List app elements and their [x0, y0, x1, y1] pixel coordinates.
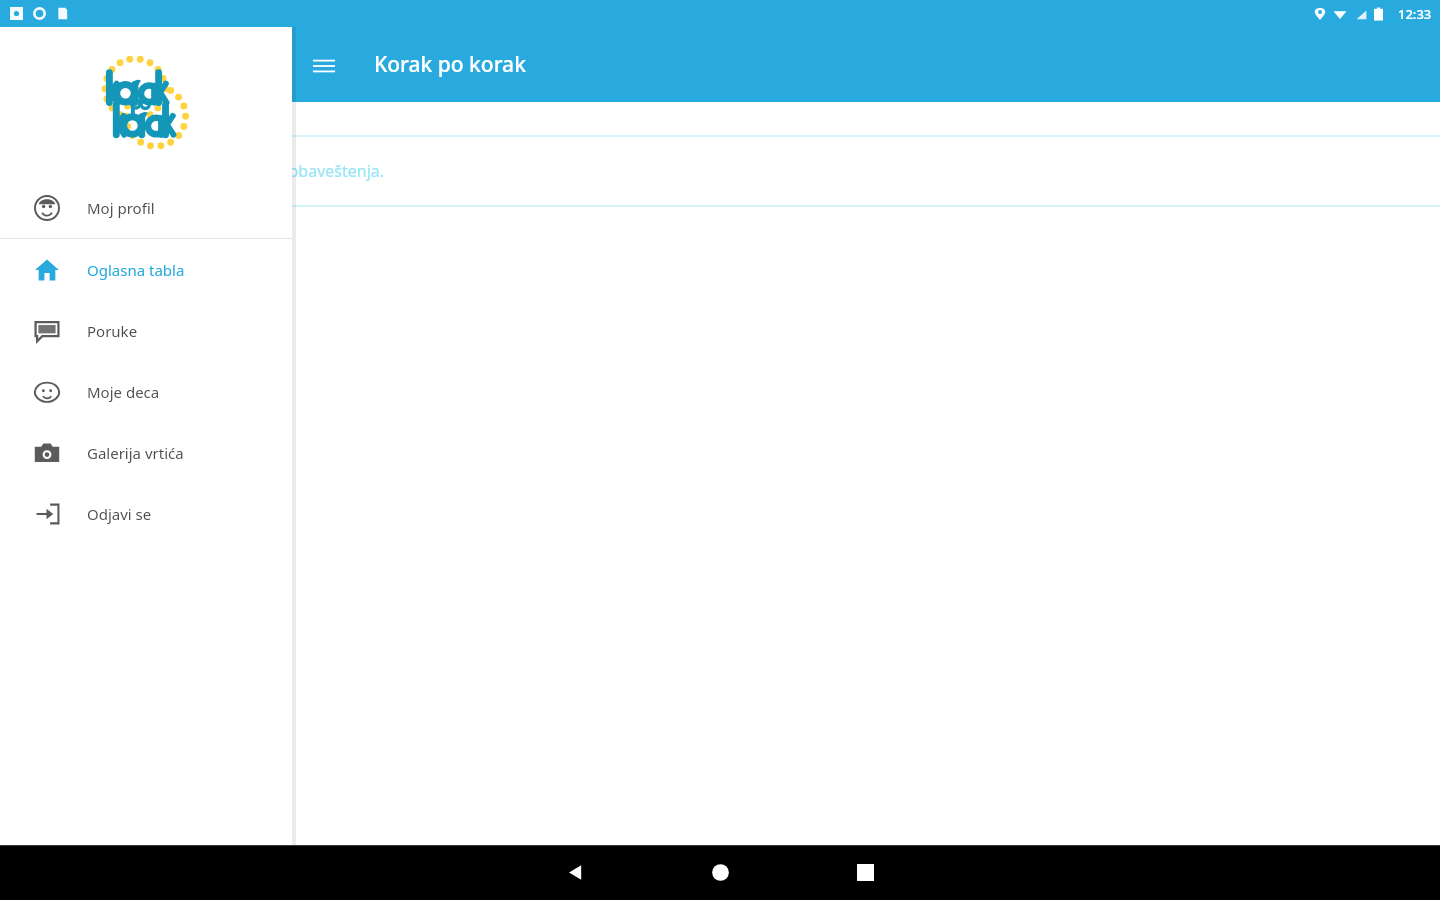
button[interactable]: Recent apps	[793, 845, 938, 900]
button[interactable]: Ne postoje prethodna obaveštenja.	[0, 135, 1440, 207]
button[interactable]: Moj profil	[0, 177, 292, 238]
staticText: Poruke	[87, 321, 138, 341]
staticText: Ne postoje prethodna obaveštenja.	[120, 160, 385, 182]
button[interactable]: Home	[648, 845, 793, 900]
button[interactable]: Back	[503, 845, 648, 900]
staticText: Galerija vrtića	[87, 443, 184, 463]
staticText: 12:33	[1398, 5, 1432, 23]
button[interactable]: Odjavi se	[0, 483, 292, 544]
staticText: Odjavi se	[87, 504, 152, 524]
button[interactable]: Galerija vrtića	[0, 422, 292, 483]
button[interactable]: Moje deca	[0, 361, 292, 422]
button[interactable]: Poruke	[0, 300, 292, 361]
staticText: Moj profil	[87, 198, 155, 218]
button[interactable]: Open navigation drawer	[300, 41, 348, 89]
button[interactable]: Oglasna tabla	[0, 239, 292, 300]
staticText: Oglasna tabla	[87, 260, 185, 280]
staticText: Korak po korak	[374, 50, 526, 79]
staticText: Moje deca	[87, 382, 160, 402]
